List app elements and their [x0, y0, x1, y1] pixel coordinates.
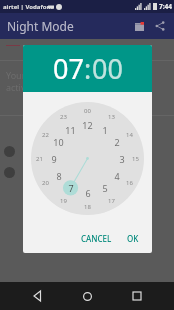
button[interactable]: Home — [75, 284, 99, 308]
button[interactable]: OK — [122, 229, 144, 248]
staticText: 7 — [68, 182, 74, 194]
staticText: 21 — [36, 155, 43, 163]
staticText: Your ... — [6, 69, 35, 81]
staticText: activ... — [6, 81, 33, 93]
button[interactable]: Back — [26, 284, 50, 308]
button[interactable]: 07 — [53, 50, 84, 87]
staticText: 4 — [114, 170, 120, 182]
staticText: 9 — [51, 153, 57, 165]
staticText: 2 — [114, 136, 120, 148]
button[interactable]: Recent apps — [125, 284, 149, 308]
staticText: 8 — [56, 170, 62, 182]
staticText: 22 — [42, 131, 49, 139]
staticText: 6 — [85, 187, 91, 199]
staticText: 17 — [108, 197, 115, 205]
staticText: 10 — [53, 136, 64, 148]
staticText: 20 — [42, 179, 49, 187]
staticText: 11 — [65, 124, 76, 136]
staticText: 00 — [84, 107, 91, 115]
staticText: 1 — [102, 124, 108, 136]
staticText: airtel | Vodafone — [3, 3, 54, 11]
button[interactable]: CANCEL — [76, 229, 117, 248]
staticText: 12 — [82, 119, 93, 131]
staticText: 5 — [102, 182, 108, 194]
button[interactable]: Share — [152, 18, 168, 34]
staticText: 18 — [84, 203, 91, 211]
staticText: 7:44 — [159, 2, 172, 11]
button[interactable]: Gifts — [131, 18, 147, 34]
staticText: 3 — [119, 153, 125, 165]
staticText: 19 — [60, 197, 67, 205]
staticText: 13 — [108, 113, 115, 121]
staticText: : — [84, 50, 92, 87]
staticText: 15 — [132, 155, 139, 163]
staticText: Night Mode — [7, 18, 74, 34]
button[interactable]: 00 — [92, 50, 123, 87]
staticText: OK — [127, 233, 139, 244]
staticText: 16 — [126, 179, 133, 187]
staticText: 23 — [60, 113, 67, 121]
staticText: 14 — [126, 131, 133, 139]
staticText: CANCEL — [81, 233, 112, 244]
